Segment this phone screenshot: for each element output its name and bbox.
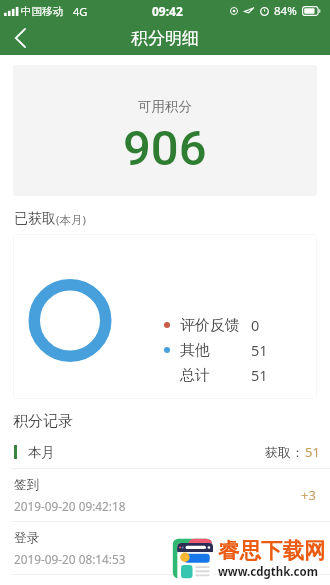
- staticText: 906: [123, 120, 207, 177]
- staticText: 2019-09-20 08:14:53: [14, 551, 126, 567]
- staticText: 积分记录: [13, 412, 73, 431]
- staticText: (本月): [56, 212, 86, 228]
- staticText: 已获取: [14, 210, 56, 228]
- staticText: 中国移动: [21, 5, 63, 18]
- staticText: 获取：: [265, 444, 304, 460]
- staticText: 4G: [73, 4, 88, 19]
- staticText: +3: [301, 486, 316, 504]
- staticText: 评价反馈: [180, 316, 240, 335]
- staticText: 积分明细: [131, 28, 199, 49]
- staticText: 其他: [180, 341, 210, 360]
- staticText: 51: [251, 340, 268, 360]
- staticText: 09:42: [152, 3, 183, 19]
- staticText: 登录: [14, 530, 39, 546]
- staticText: 睿思下载网: [218, 537, 326, 564]
- staticText: 本月: [28, 444, 55, 461]
- staticText: 51: [251, 365, 268, 385]
- staticText: 2019-09-20 09:42:18: [14, 498, 126, 514]
- staticText: 签到: [14, 477, 39, 493]
- button[interactable]: 签到: [0, 469, 330, 522]
- staticText: 84%: [274, 3, 297, 19]
- button[interactable]: 登录: [0, 522, 330, 575]
- staticText: www.cdgthk.com: [218, 564, 318, 580]
- staticText: 总计: [180, 366, 210, 385]
- staticText: 51: [305, 443, 320, 461]
- staticText: 0: [251, 315, 260, 335]
- button[interactable]: Back: [0, 22, 40, 55]
- staticText: 可用积分: [138, 98, 192, 115]
- button[interactable]: 可用积分: [13, 65, 317, 196]
